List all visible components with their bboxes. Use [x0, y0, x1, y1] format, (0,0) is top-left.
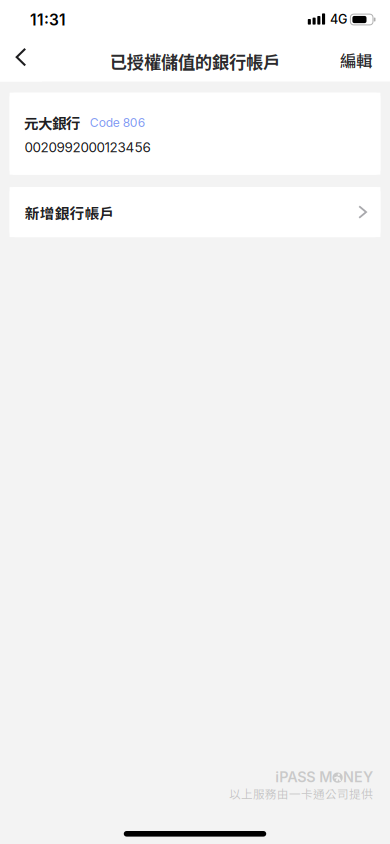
staticText: 4G [330, 11, 347, 27]
staticText: 元大銀行 [24, 112, 80, 133]
staticText: 編輯 [340, 48, 372, 72]
button[interactable]: 編輯 [326, 44, 390, 81]
staticText: 已授權儲值的銀行帳戶 [110, 49, 280, 74]
staticText: NEY [343, 768, 373, 786]
staticText: 以上服務由一卡通公司提供 [229, 785, 373, 802]
button[interactable]: Back [0, 44, 42, 81]
staticText: 新增銀行帳戶 [25, 202, 115, 223]
staticText: Code 806 [90, 115, 146, 130]
staticText: 11:31 [30, 10, 66, 29]
staticText: iPASS M [275, 768, 332, 786]
button[interactable]: 新增銀行帳戶 [10, 187, 380, 237]
staticText: 0020992000123456 [24, 139, 150, 155]
